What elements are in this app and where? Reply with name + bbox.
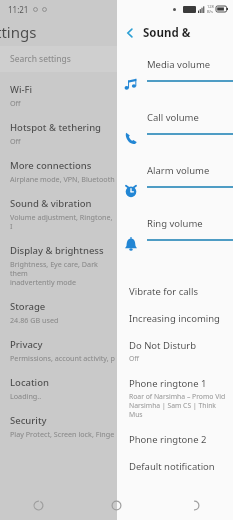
button[interactable]: Phone ringtone 1 [117, 370, 233, 426]
button[interactable]: Hotspot & tethering [0, 114, 117, 152]
staticText: Security [10, 414, 47, 427]
button[interactable]: Vibrate for calls [117, 278, 233, 305]
staticText: B/s [207, 9, 214, 14]
staticText: Privacy [10, 338, 43, 351]
staticText: More connections [10, 159, 92, 172]
staticText: Phone ringtone 2 [129, 433, 207, 446]
staticText: Search settings [10, 53, 71, 65]
button[interactable]: Increasing incoming ring [117, 305, 233, 332]
button[interactable]: Phone ringtone 2 [117, 426, 233, 453]
button[interactable]: Back [155, 490, 233, 520]
staticText: Volume adjustment, Ringtone, I [10, 212, 115, 231]
staticText: Increasing incoming ring [129, 312, 231, 325]
button[interactable]: Storage [0, 293, 117, 331]
button[interactable]: Alarm volume [117, 158, 233, 211]
staticText: Vibrate for calls [129, 285, 199, 298]
staticText: Storage [10, 300, 46, 313]
button[interactable]: Do Not Disturb [117, 332, 233, 370]
button[interactable]: More connections [0, 152, 117, 190]
button[interactable]: Call volume [117, 105, 233, 158]
staticText: Call volume [147, 111, 199, 124]
staticText: Alarm volume [147, 164, 210, 177]
staticText: Phone ringtone 1 [129, 377, 207, 390]
staticText: ttings [0, 22, 37, 42]
staticText: Do Not Disturb [129, 339, 197, 352]
button[interactable]: Ring volume [117, 211, 233, 264]
button[interactable]: Sound & vibration [0, 190, 117, 237]
staticText: Sound & vibration [143, 25, 233, 41]
button[interactable]: Wi-Fi [0, 76, 117, 114]
staticText: Media volume [147, 58, 211, 71]
staticText: Loading.. [10, 391, 42, 401]
staticText: Roar of Narsimha – Promo Vid Narsimha | … [129, 392, 231, 419]
staticText: Wi-Fi [10, 83, 33, 96]
staticText: 24.86 GB used [10, 315, 59, 325]
staticText: Default notification soun [129, 460, 231, 473]
staticText: Permissions, account activity, p [10, 353, 115, 363]
button[interactable]: Home [77, 490, 155, 520]
button[interactable]: Recents [0, 490, 77, 520]
staticText: Hotspot & tethering [10, 121, 102, 134]
button[interactable]: Media volume [117, 52, 233, 105]
button[interactable]: Display & brightness [0, 237, 117, 293]
staticText: Ring volume [147, 217, 203, 230]
button[interactable]: Back [117, 20, 143, 46]
staticText: 128 [207, 4, 214, 9]
button[interactable]: Security [0, 407, 117, 445]
staticText: 11:21 [8, 4, 29, 15]
staticText: Location [10, 376, 49, 389]
button[interactable]: Default notification soun [117, 453, 233, 480]
staticText: Sound & vibration [10, 197, 92, 210]
staticText: Play Protect, Screen lock, Finge [10, 429, 115, 439]
staticText: Off [129, 354, 139, 363]
button[interactable]: Location [0, 369, 117, 407]
staticText: Brightness, Eye care, Dark them inadvert… [10, 259, 115, 287]
staticText: Off [10, 98, 21, 108]
button[interactable]: Privacy [0, 331, 117, 369]
staticText: Off [10, 136, 21, 146]
staticText: Display & brightness [10, 244, 104, 257]
staticText: Airplane mode, VPN, Bluetooth [10, 174, 115, 184]
